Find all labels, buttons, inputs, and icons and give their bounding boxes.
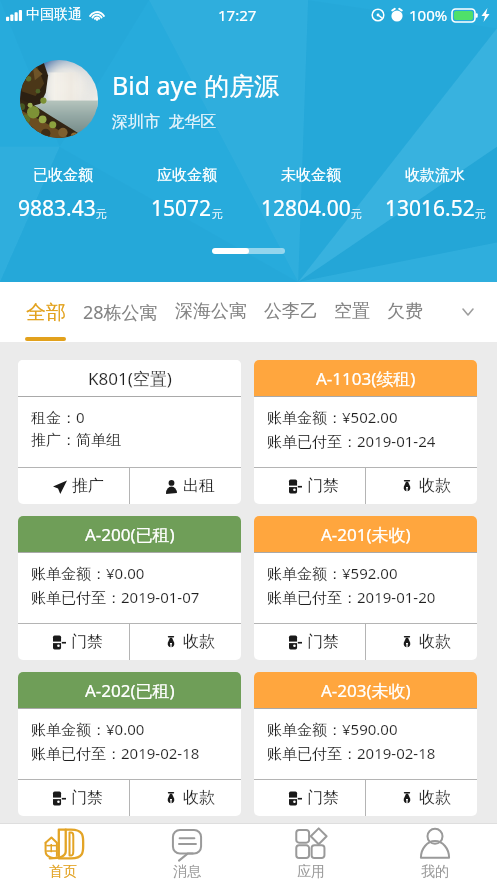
button[interactable]: 门禁	[18, 780, 129, 816]
staticText: 收款流水	[405, 166, 465, 185]
staticText: 元	[351, 207, 362, 221]
staticText: 门禁	[71, 788, 103, 808]
staticText: 门禁	[71, 632, 103, 652]
staticText: 收款	[419, 632, 451, 652]
staticText: 门禁	[307, 476, 339, 496]
staticText: 应用	[297, 863, 325, 881]
staticText: 消息	[173, 863, 201, 881]
button[interactable]: A-203(未收)	[254, 672, 477, 816]
button[interactable]: 收款	[366, 780, 477, 816]
staticText: A-1103(续租)	[316, 367, 416, 390]
staticText: 深圳市 龙华区	[112, 110, 217, 132]
staticText: 13016.52	[385, 194, 475, 223]
staticText: 门禁	[307, 632, 339, 652]
staticText: 账单金额：¥590.00	[267, 719, 398, 739]
staticText: Bid aye 的房源	[112, 68, 279, 102]
staticText: A-202(已租)	[85, 679, 175, 702]
staticText: 中国联通	[26, 6, 82, 24]
staticText: 收款	[183, 632, 215, 652]
staticText: 欠费	[387, 300, 423, 323]
staticText: 推广	[72, 476, 104, 496]
button[interactable]: K801(空置)	[18, 360, 241, 504]
button[interactable]: 我的	[373, 823, 497, 883]
button[interactable]: 门禁	[254, 468, 365, 504]
staticText: 12804.00	[261, 194, 351, 223]
staticText: 账单金额：¥0.00	[31, 563, 145, 583]
button[interactable]: 深海公寓	[175, 282, 247, 342]
staticText: 收款	[419, 788, 451, 808]
button[interactable]: 公李乙	[264, 282, 318, 342]
button[interactable]: 全部	[25, 282, 66, 342]
staticText: 首页	[49, 863, 77, 881]
staticText: 100%	[409, 5, 448, 25]
staticText: 已收金额	[33, 166, 93, 185]
button[interactable]: 28栋公寓	[83, 282, 158, 342]
staticText: A-203(未收)	[321, 679, 411, 702]
staticText: K801(空置)	[88, 367, 172, 390]
staticText: 账单已付至：2019-01-07	[31, 587, 200, 607]
staticText: 深海公寓	[175, 300, 247, 323]
button[interactable]: 推广	[18, 468, 129, 504]
staticText: 账单金额：¥502.00	[267, 407, 398, 427]
button[interactable]: 收款	[366, 624, 477, 660]
staticText: 元	[475, 207, 486, 221]
staticText: 15072	[151, 194, 212, 223]
staticText: 未收金额	[281, 166, 341, 185]
staticText: 我的	[421, 863, 449, 881]
staticText: 公李乙	[264, 300, 318, 323]
staticText: 9883.43	[18, 194, 96, 223]
staticText: A-200(已租)	[85, 523, 175, 546]
staticText: 租金：0	[31, 407, 85, 427]
button[interactable]: 门禁	[18, 624, 129, 660]
button[interactable]: 收款	[366, 468, 477, 504]
staticText: 账单已付至：2019-01-24	[267, 431, 436, 451]
staticText: 推广：简单组	[31, 431, 121, 450]
staticText: 28栋公寓	[83, 300, 158, 325]
staticText: 门禁	[307, 788, 339, 808]
button[interactable]: 门禁	[254, 624, 365, 660]
staticText: 账单金额：¥0.00	[31, 719, 145, 739]
staticText: 收款	[419, 476, 451, 496]
button[interactable]: 首页	[0, 823, 125, 883]
staticText: 元	[96, 207, 107, 221]
button[interactable]: A-201(未收)	[254, 516, 477, 660]
button[interactable]: A-200(已租)	[18, 516, 241, 660]
staticText: 账单金额：¥592.00	[267, 563, 398, 583]
staticText: 元	[212, 207, 223, 221]
staticText: 出租	[183, 476, 215, 496]
button[interactable]: 空置	[334, 282, 370, 342]
staticText: 收款	[183, 788, 215, 808]
staticText: 账单已付至：2019-02-18	[31, 743, 200, 763]
staticText: 空置	[334, 300, 370, 323]
button[interactable]: 门禁	[254, 780, 365, 816]
button[interactable]: A-202(已租)	[18, 672, 241, 816]
staticText: 账单已付至：2019-02-18	[267, 743, 436, 763]
staticText: 账单已付至：2019-01-20	[267, 587, 436, 607]
button[interactable]: 应用	[249, 823, 373, 883]
staticText: A-201(未收)	[321, 523, 411, 546]
staticText: 17:27	[218, 5, 257, 25]
button[interactable]: 欠费	[387, 282, 423, 342]
button[interactable]: More filters	[453, 299, 483, 325]
button[interactable]: 消息	[125, 823, 249, 883]
staticText: 应收金额	[157, 166, 217, 185]
button[interactable]: 出租	[130, 468, 241, 504]
staticText: 全部	[26, 300, 66, 325]
button[interactable]: A-1103(续租)	[254, 360, 477, 504]
button[interactable]: 收款	[130, 624, 241, 660]
button[interactable]: 收款	[130, 780, 241, 816]
